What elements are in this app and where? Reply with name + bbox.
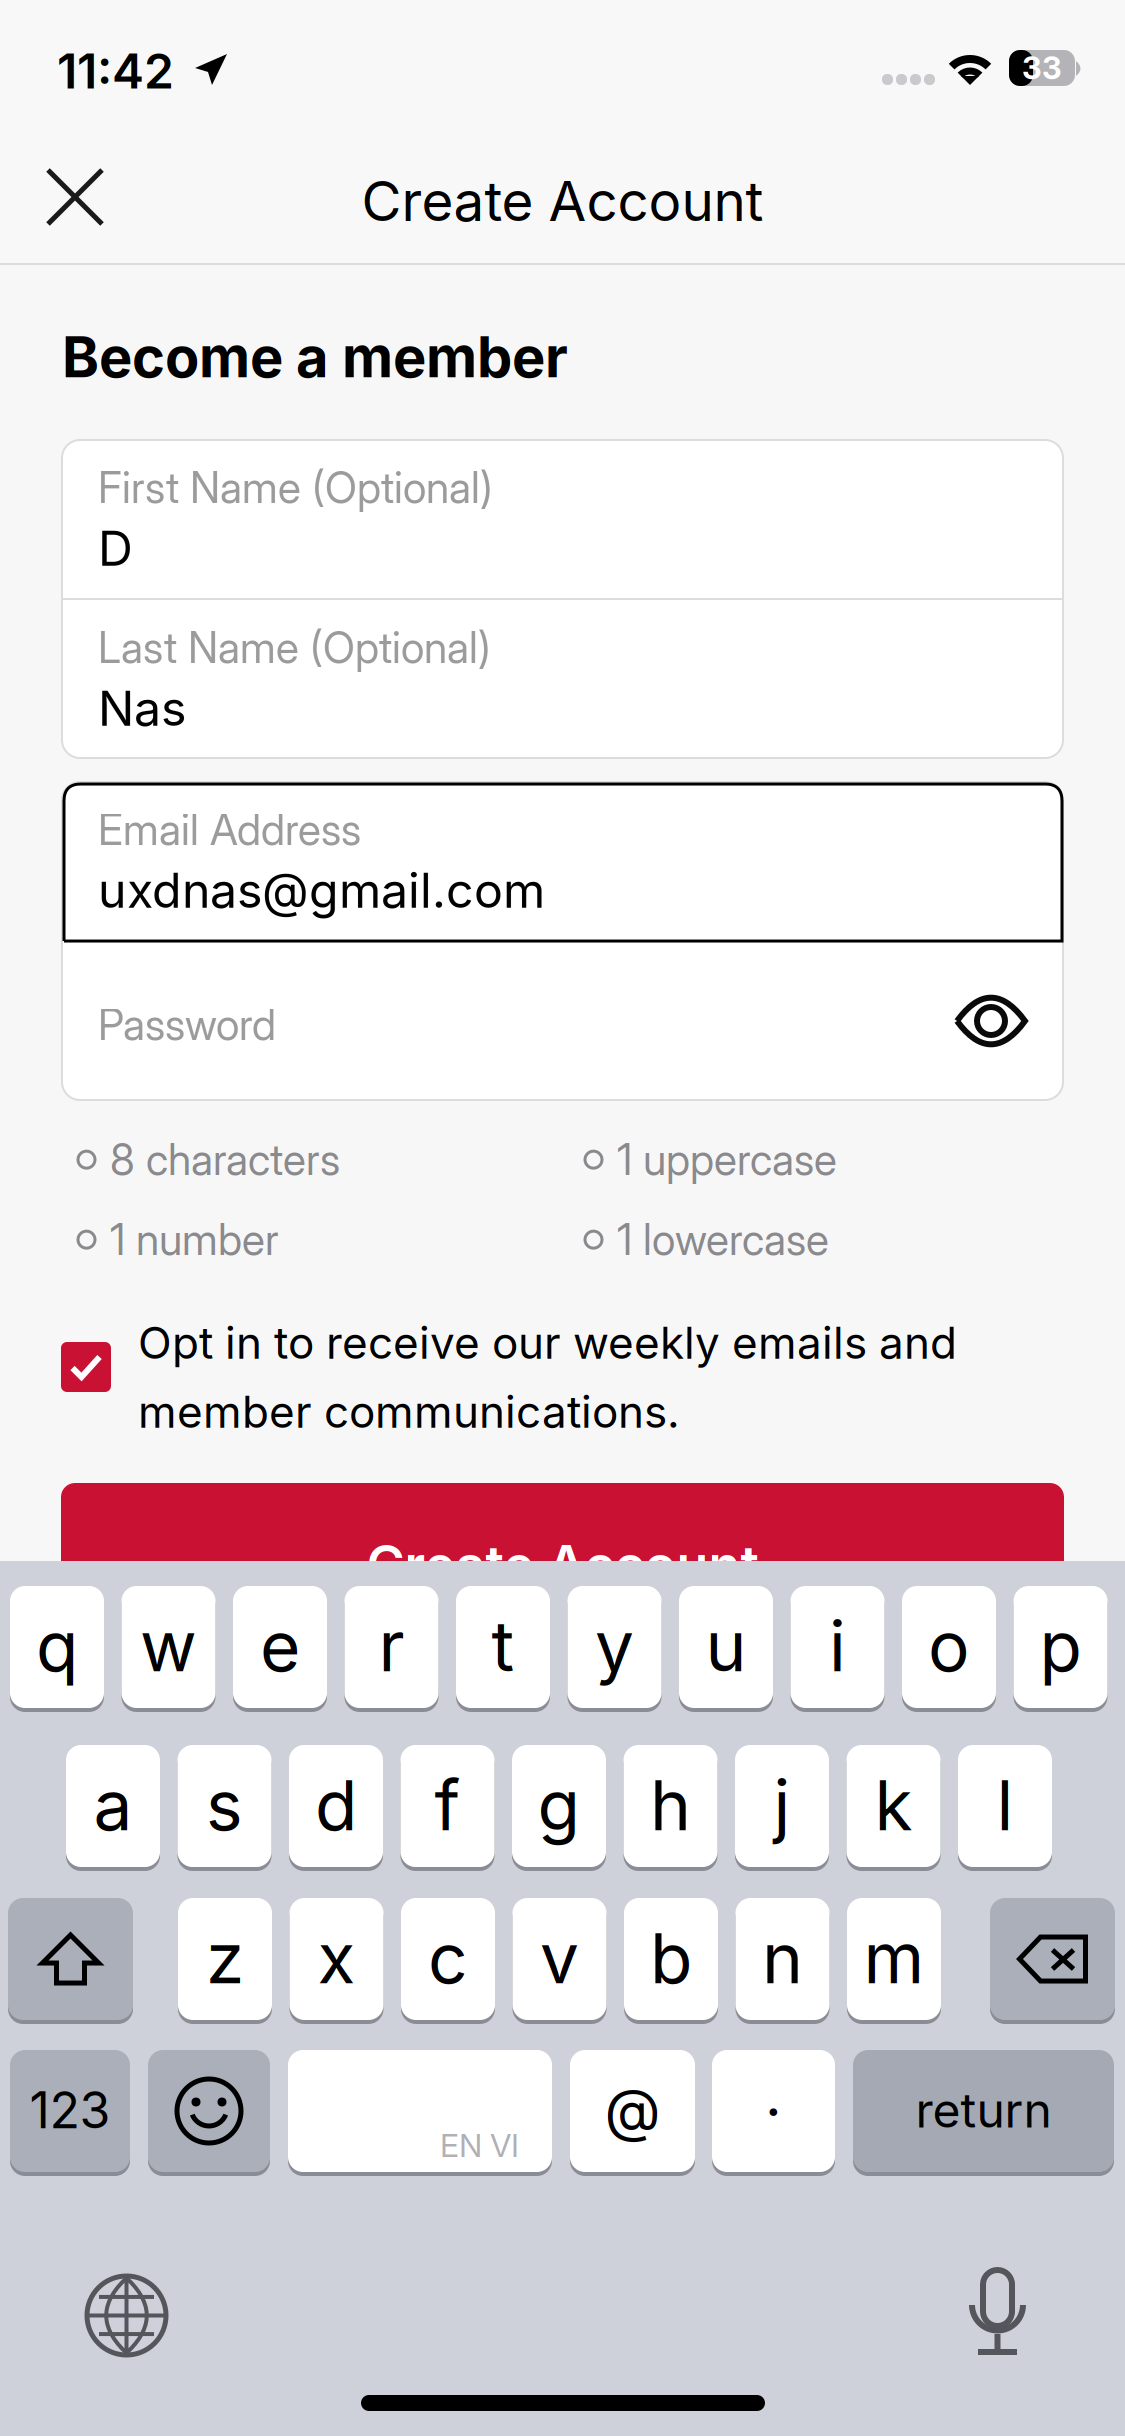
- staticText: Nas: [98, 679, 186, 737]
- staticText: k: [874, 1763, 912, 1847]
- button[interactable]: y: [567, 1586, 661, 1708]
- staticText: 1 uppercase: [617, 1134, 837, 1185]
- button[interactable]: k: [846, 1745, 940, 1867]
- staticText: 11:42: [57, 42, 174, 100]
- staticText: x: [317, 1916, 355, 2000]
- button[interactable]: u: [679, 1586, 773, 1708]
- button[interactable]: @: [570, 2050, 695, 2172]
- button[interactable]: s: [177, 1745, 271, 1867]
- button[interactable]: z: [178, 1898, 272, 2020]
- button[interactable]: 123: [10, 2050, 130, 2172]
- button[interactable]: [288, 2050, 552, 2172]
- button[interactable]: x: [289, 1898, 383, 2020]
- staticText: .: [765, 2060, 782, 2130]
- staticText: 123: [29, 2080, 110, 2140]
- staticText: Create Account: [366, 1532, 758, 1595]
- staticText: u: [705, 1604, 746, 1688]
- button[interactable]: Show password: [941, 982, 1041, 1060]
- staticText: d: [315, 1763, 357, 1847]
- staticText: o: [928, 1604, 970, 1688]
- staticText: Email Address: [98, 804, 361, 855]
- staticText: D: [98, 519, 133, 577]
- staticText: return: [915, 2081, 1051, 2139]
- staticText: Last Name (Optional): [98, 622, 491, 673]
- staticText: 1 number: [110, 1214, 279, 1265]
- staticText: 1 lowercase: [617, 1214, 829, 1265]
- staticText: 33: [1022, 49, 1062, 87]
- button[interactable]: l: [958, 1745, 1052, 1867]
- staticText: e: [260, 1604, 300, 1688]
- button[interactable]: t: [456, 1586, 550, 1708]
- staticText: f: [434, 1763, 460, 1847]
- button[interactable]: q: [10, 1586, 104, 1708]
- staticText: Create Account: [361, 168, 763, 234]
- button[interactable]: .: [712, 2050, 835, 2172]
- button[interactable]: w: [121, 1586, 215, 1708]
- staticText: b: [650, 1916, 692, 2000]
- button[interactable]: Space: [288, 2050, 552, 2176]
- button[interactable]: m: [847, 1898, 941, 2020]
- button[interactable]: r: [344, 1586, 438, 1708]
- staticText: 8 characters: [110, 1134, 340, 1185]
- staticText: z: [206, 1916, 244, 2000]
- button[interactable]: Emoji: [148, 2050, 270, 2172]
- button[interactable]: Dictation: [969, 2270, 1026, 2355]
- button[interactable]: b: [624, 1898, 718, 2020]
- staticText: Become a member: [62, 323, 568, 391]
- button[interactable]: v: [512, 1898, 606, 2020]
- staticText: p: [1039, 1604, 1081, 1688]
- staticText: w: [140, 1604, 197, 1688]
- button[interactable]: o: [902, 1586, 996, 1708]
- button[interactable]: i: [790, 1586, 884, 1708]
- staticText: m: [863, 1916, 924, 2000]
- button[interactable]: [8, 1898, 133, 2020]
- staticText: v: [540, 1916, 579, 2000]
- button[interactable]: d: [289, 1745, 383, 1867]
- staticText: r: [378, 1604, 404, 1688]
- button[interactable]: c: [401, 1898, 495, 2020]
- button[interactable]: Shift: [8, 1898, 133, 2020]
- staticText: EN VI: [440, 2126, 519, 2165]
- staticText: n: [762, 1916, 803, 2000]
- staticText: a: [93, 1763, 132, 1847]
- button[interactable]: [990, 1898, 1115, 2020]
- button[interactable]: Close: [17, 139, 133, 255]
- button[interactable]: n: [735, 1898, 829, 2020]
- button[interactable]: return: [853, 2050, 1114, 2172]
- staticText: q: [36, 1604, 78, 1688]
- staticText: Password: [98, 999, 276, 1050]
- button[interactable]: g: [512, 1745, 606, 1867]
- button[interactable]: f: [400, 1745, 494, 1867]
- button[interactable]: Next keyboard: [87, 2276, 166, 2355]
- staticText: g: [537, 1763, 580, 1847]
- staticText: h: [650, 1763, 691, 1847]
- button[interactable]: h: [623, 1745, 717, 1867]
- button[interactable]: Opt in to receive our weekly emails and …: [61, 1316, 1062, 1456]
- staticText: @: [604, 2075, 660, 2145]
- staticText: s: [206, 1763, 243, 1847]
- button[interactable]: j: [735, 1745, 829, 1867]
- button[interactable]: Create Account: [61, 1483, 1064, 1613]
- staticText: First Name (Optional): [98, 462, 493, 513]
- staticText: uxdnas@gmail.com: [98, 861, 545, 919]
- button[interactable]: p: [1013, 1586, 1107, 1708]
- button[interactable]: Delete: [990, 1898, 1115, 2020]
- staticText: l: [996, 1763, 1013, 1847]
- staticText: c: [428, 1916, 468, 2000]
- staticText: y: [595, 1604, 634, 1688]
- button[interactable]: [148, 2050, 270, 2172]
- button[interactable]: a: [66, 1745, 160, 1867]
- button[interactable]: e: [233, 1586, 327, 1708]
- staticText: j: [773, 1763, 790, 1847]
- staticText: Opt in to receive our weekly emails and …: [138, 1316, 957, 1438]
- staticText: i: [829, 1604, 846, 1688]
- staticText: t: [491, 1604, 514, 1688]
